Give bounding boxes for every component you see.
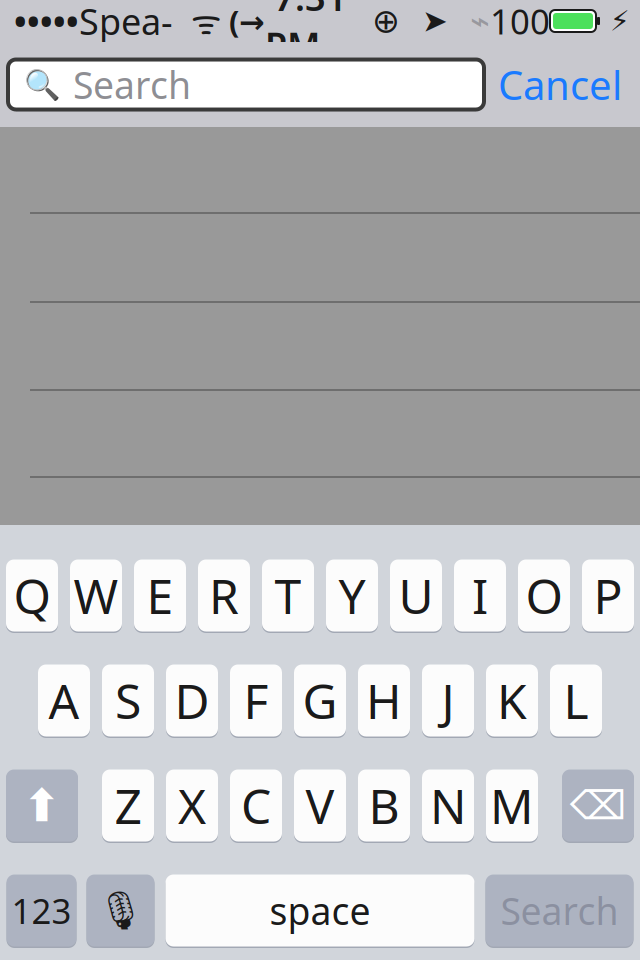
button[interactable]: Search: [485, 873, 633, 948]
staticText: B: [368, 774, 399, 837]
button[interactable]: Q: [6, 558, 58, 633]
button[interactable]: A: [38, 663, 90, 738]
staticText: C: [241, 774, 271, 837]
button[interactable]: I: [454, 558, 506, 633]
staticText: (→: [221, 1, 265, 41]
staticText: ⌫: [569, 783, 626, 828]
staticText: K: [497, 669, 527, 732]
staticText: V: [305, 774, 334, 837]
staticText: ⊕: [372, 2, 400, 40]
button[interactable]: S: [102, 663, 154, 738]
button[interactable]: X: [166, 768, 218, 843]
staticText: F: [243, 669, 268, 732]
staticText: Z: [114, 774, 141, 837]
staticText: ⌁: [448, 2, 490, 40]
staticText: SpeakOut: [79, 0, 173, 93]
staticText: ᯤ: [173, 0, 221, 43]
staticText: U: [398, 564, 433, 627]
staticText: H: [366, 669, 402, 732]
button[interactable]: Delete: [562, 768, 634, 843]
button[interactable]: Z: [102, 768, 154, 843]
staticText: N: [430, 774, 466, 837]
staticText: ➤: [400, 4, 448, 38]
button[interactable]: Cancel: [492, 56, 628, 112]
staticText: •••••: [14, 0, 79, 43]
staticText: 100%: [490, 0, 550, 90]
button[interactable]: J: [422, 663, 474, 738]
button[interactable]: T: [262, 558, 314, 633]
button[interactable]: Y: [326, 558, 378, 633]
button[interactable]: space: [165, 873, 474, 948]
button[interactable]: Shift: [6, 768, 78, 843]
staticText: S: [115, 669, 141, 732]
staticText: D: [174, 669, 209, 732]
button[interactable]: L: [550, 663, 602, 738]
button[interactable]: H: [358, 663, 410, 738]
staticText: G: [302, 669, 337, 732]
staticText: Y: [338, 564, 365, 627]
staticText: R: [209, 564, 239, 627]
staticText: I: [472, 564, 488, 627]
button[interactable]: W: [70, 558, 122, 633]
staticText: X: [178, 774, 206, 837]
staticText: Search: [500, 886, 618, 935]
button[interactable]: C: [230, 768, 282, 843]
staticText: O: [525, 564, 562, 627]
staticText: M: [490, 774, 534, 837]
button[interactable]: V: [294, 768, 346, 843]
staticText: W: [73, 564, 118, 627]
staticText: T: [274, 564, 301, 627]
button[interactable]: B: [358, 768, 410, 843]
staticText: ⬆: [23, 780, 61, 831]
button[interactable]: N: [422, 768, 474, 843]
staticText: 123: [11, 887, 71, 933]
staticText: L: [563, 669, 588, 732]
staticText: Cancel: [498, 58, 622, 111]
staticText: J: [441, 669, 454, 732]
button[interactable]: 🔍: [8, 59, 484, 109]
button[interactable]: F: [230, 663, 282, 738]
button[interactable]: P: [582, 558, 634, 633]
staticText: ⚡︎: [600, 5, 630, 37]
button[interactable]: D: [166, 663, 218, 738]
staticText: Search: [73, 60, 191, 109]
staticText: Q: [13, 564, 50, 627]
staticText: 🔍: [24, 68, 61, 101]
button[interactable]: U: [390, 558, 442, 633]
staticText: 7:31 PM: [265, 0, 347, 69]
button[interactable]: Dictate: [86, 873, 154, 948]
staticText: space: [269, 886, 370, 935]
staticText: P: [593, 564, 622, 627]
button[interactable]: R: [198, 558, 250, 633]
staticText: A: [48, 669, 79, 732]
staticText: 🎙: [97, 889, 144, 932]
button[interactable]: O: [518, 558, 570, 633]
button[interactable]: M: [486, 768, 538, 843]
button[interactable]: 123: [6, 873, 76, 948]
button[interactable]: E: [134, 558, 186, 633]
staticText: E: [146, 564, 173, 627]
button[interactable]: G: [294, 663, 346, 738]
button[interactable]: K: [486, 663, 538, 738]
